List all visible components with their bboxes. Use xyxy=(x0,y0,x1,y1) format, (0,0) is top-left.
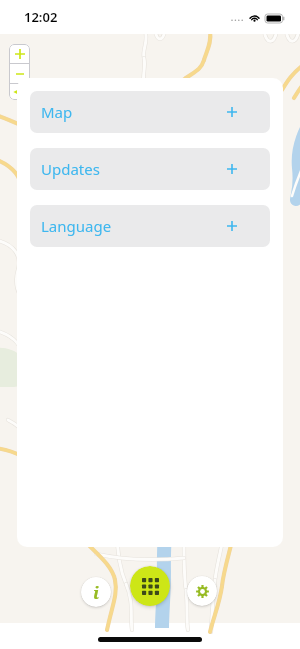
staticText: 12:02 xyxy=(24,8,58,26)
button[interactable]: Collapse xyxy=(9,84,30,100)
button[interactable]: Zoom in xyxy=(9,44,30,63)
button[interactable]: Zoom out xyxy=(9,64,30,83)
button[interactable]: Info xyxy=(81,577,111,607)
staticText: Updates xyxy=(41,159,100,179)
button[interactable]: Apps xyxy=(130,566,170,606)
button[interactable]: Language xyxy=(30,205,270,247)
staticText: Map xyxy=(41,102,73,122)
staticText: i xyxy=(93,581,100,604)
button[interactable]: Map xyxy=(30,91,270,133)
button[interactable]: Updates xyxy=(30,148,270,190)
button[interactable]: Settings xyxy=(187,576,217,606)
staticText: Language xyxy=(41,216,112,236)
